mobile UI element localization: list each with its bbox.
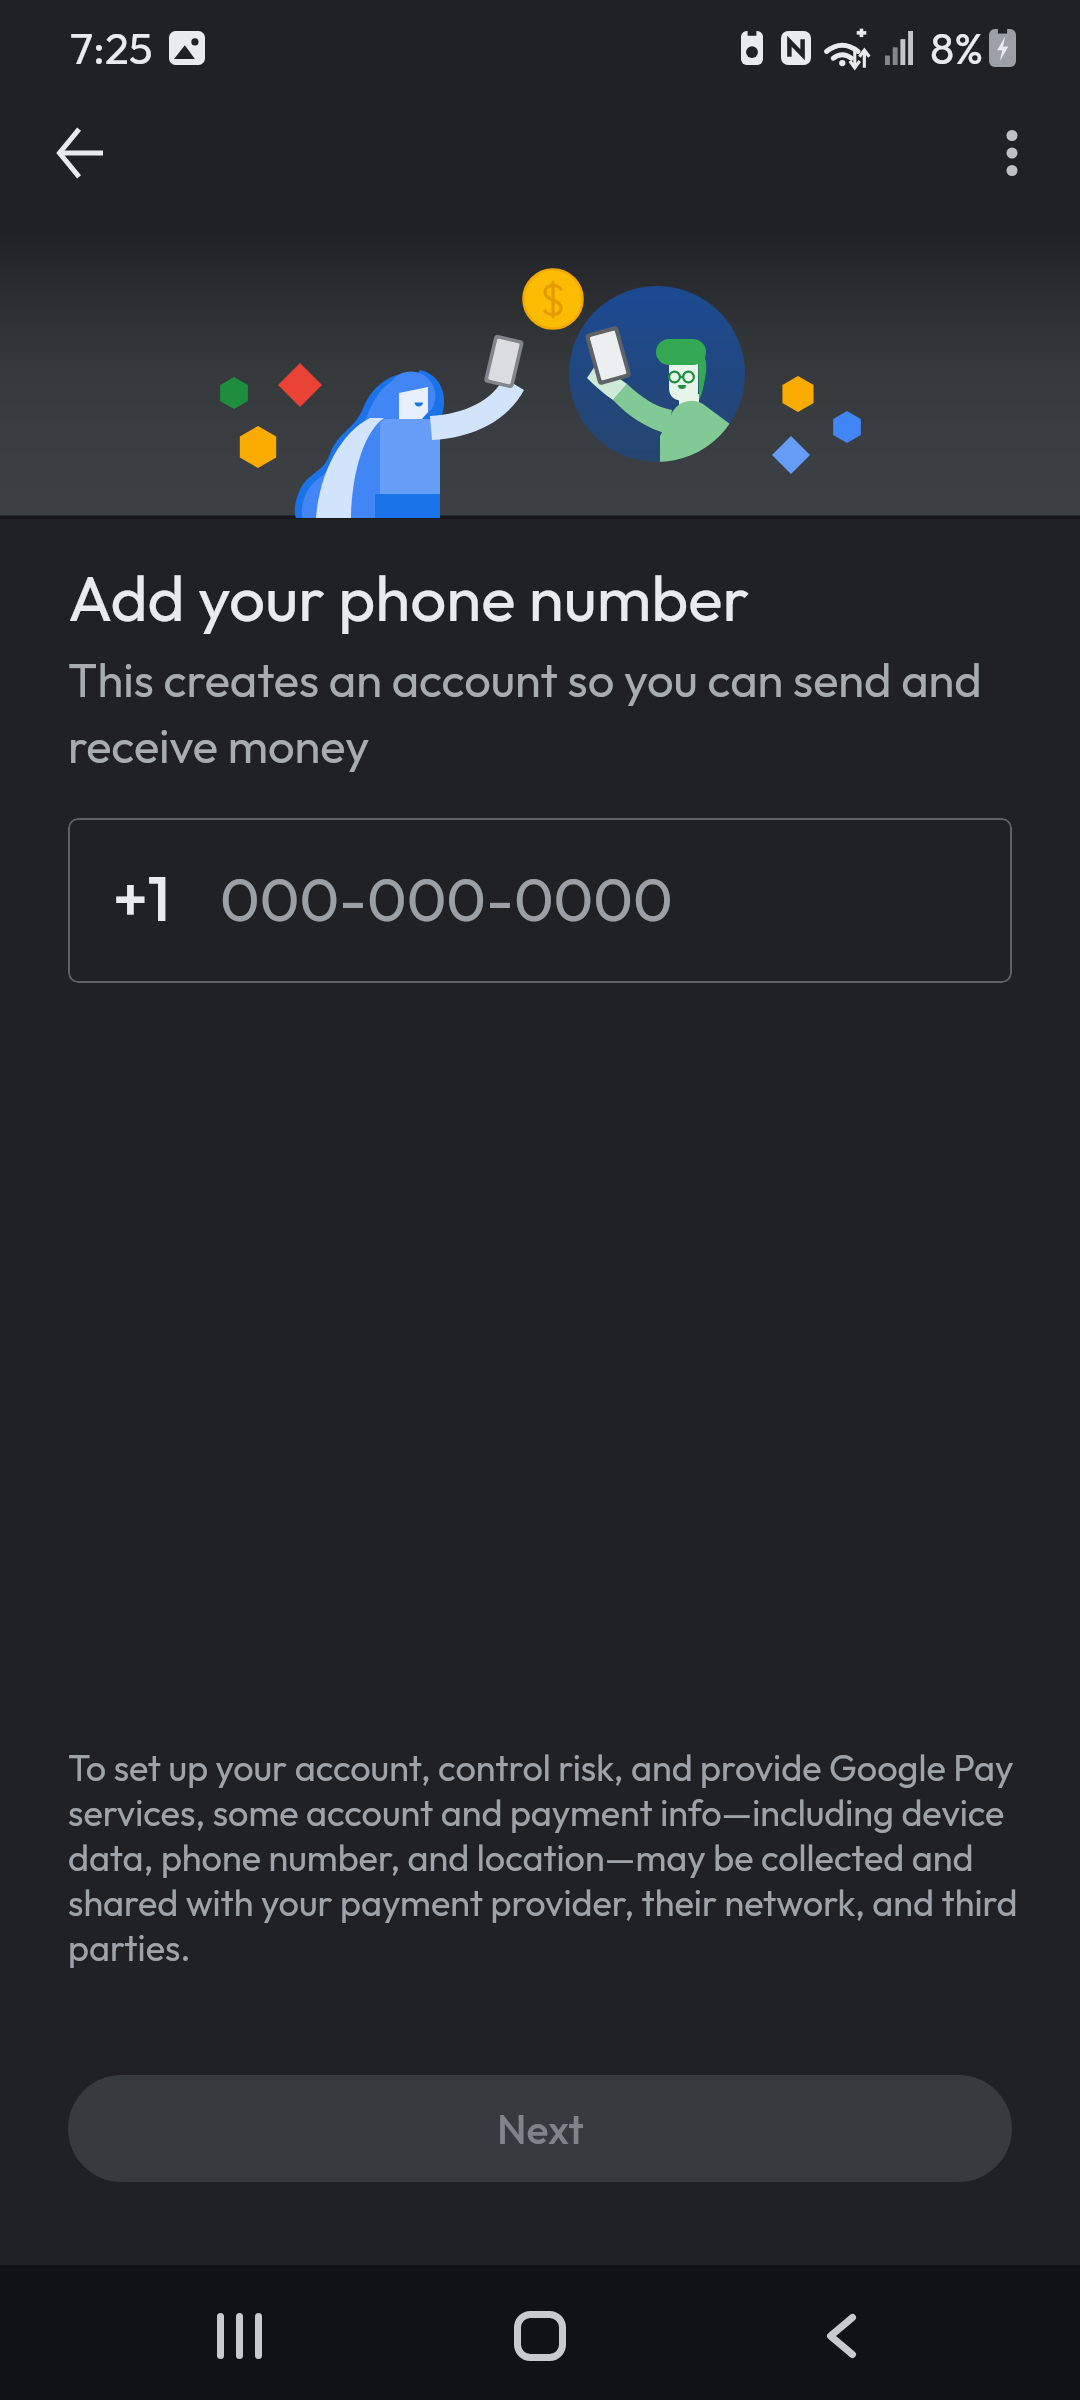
button[interactable]: Next xyxy=(68,2075,1012,2182)
button[interactable]: More options xyxy=(956,97,1068,209)
staticText: Next xyxy=(497,2103,584,2155)
staticText: +1 xyxy=(113,858,171,938)
button[interactable]: Back xyxy=(761,2276,921,2396)
button[interactable]: +1 xyxy=(68,818,1012,983)
staticText: 8% xyxy=(930,20,984,75)
staticText: This creates an account so you can send … xyxy=(68,645,1028,777)
button[interactable]: Recent apps xyxy=(159,2276,319,2396)
staticText: 7:25 xyxy=(70,20,153,75)
staticText: 000-000-0000 xyxy=(220,860,673,936)
button[interactable]: Back xyxy=(24,97,136,209)
button[interactable]: Home xyxy=(460,2276,620,2396)
staticText: Add your phone number xyxy=(68,556,750,638)
staticText: To set up your account, control risk, an… xyxy=(68,1745,1043,1970)
